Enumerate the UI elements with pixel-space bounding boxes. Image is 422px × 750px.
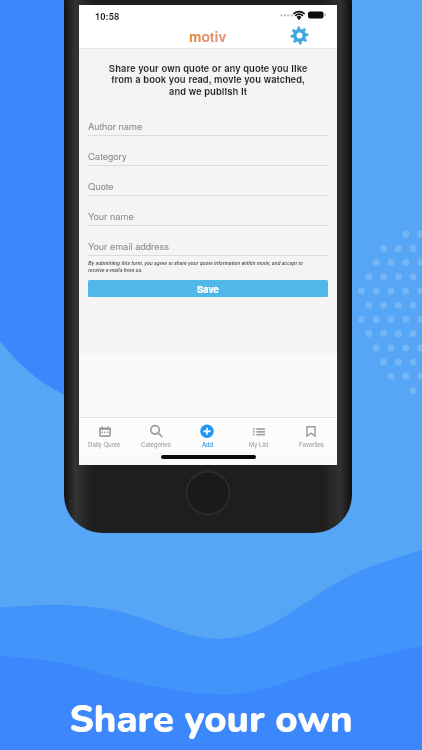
- staticText: Your email address: [88, 239, 169, 253]
- staticText: By submitting this form, you agree to sh…: [88, 260, 328, 273]
- staticText: 10:58: [95, 9, 120, 23]
- staticText: Quote: [88, 179, 114, 193]
- staticText: Daily Quote: [88, 440, 121, 449]
- button[interactable]: Home: [183, 468, 233, 518]
- staticText: Categories: [141, 440, 171, 449]
- staticText: Share your own quote or any quote you li…: [85, 61, 331, 98]
- staticText: Category: [88, 149, 127, 163]
- staticText: Author name: [88, 119, 143, 133]
- button[interactable]: Add: [181, 418, 233, 452]
- staticText: Save: [197, 282, 219, 296]
- button[interactable]: Daily Quote: [79, 418, 130, 452]
- staticText: Add: [202, 440, 213, 449]
- staticText: motiv: [189, 26, 227, 46]
- staticText: Your name: [88, 209, 134, 223]
- staticText: Share your own: [69, 694, 353, 746]
- staticText: My List: [249, 440, 269, 449]
- button[interactable]: Settings: [290, 26, 309, 45]
- button[interactable]: Favorites: [285, 418, 337, 452]
- button[interactable]: Save: [88, 280, 328, 297]
- button[interactable]: Categories: [130, 418, 181, 452]
- staticText: Favorites: [299, 440, 324, 449]
- button[interactable]: My List: [233, 418, 285, 452]
